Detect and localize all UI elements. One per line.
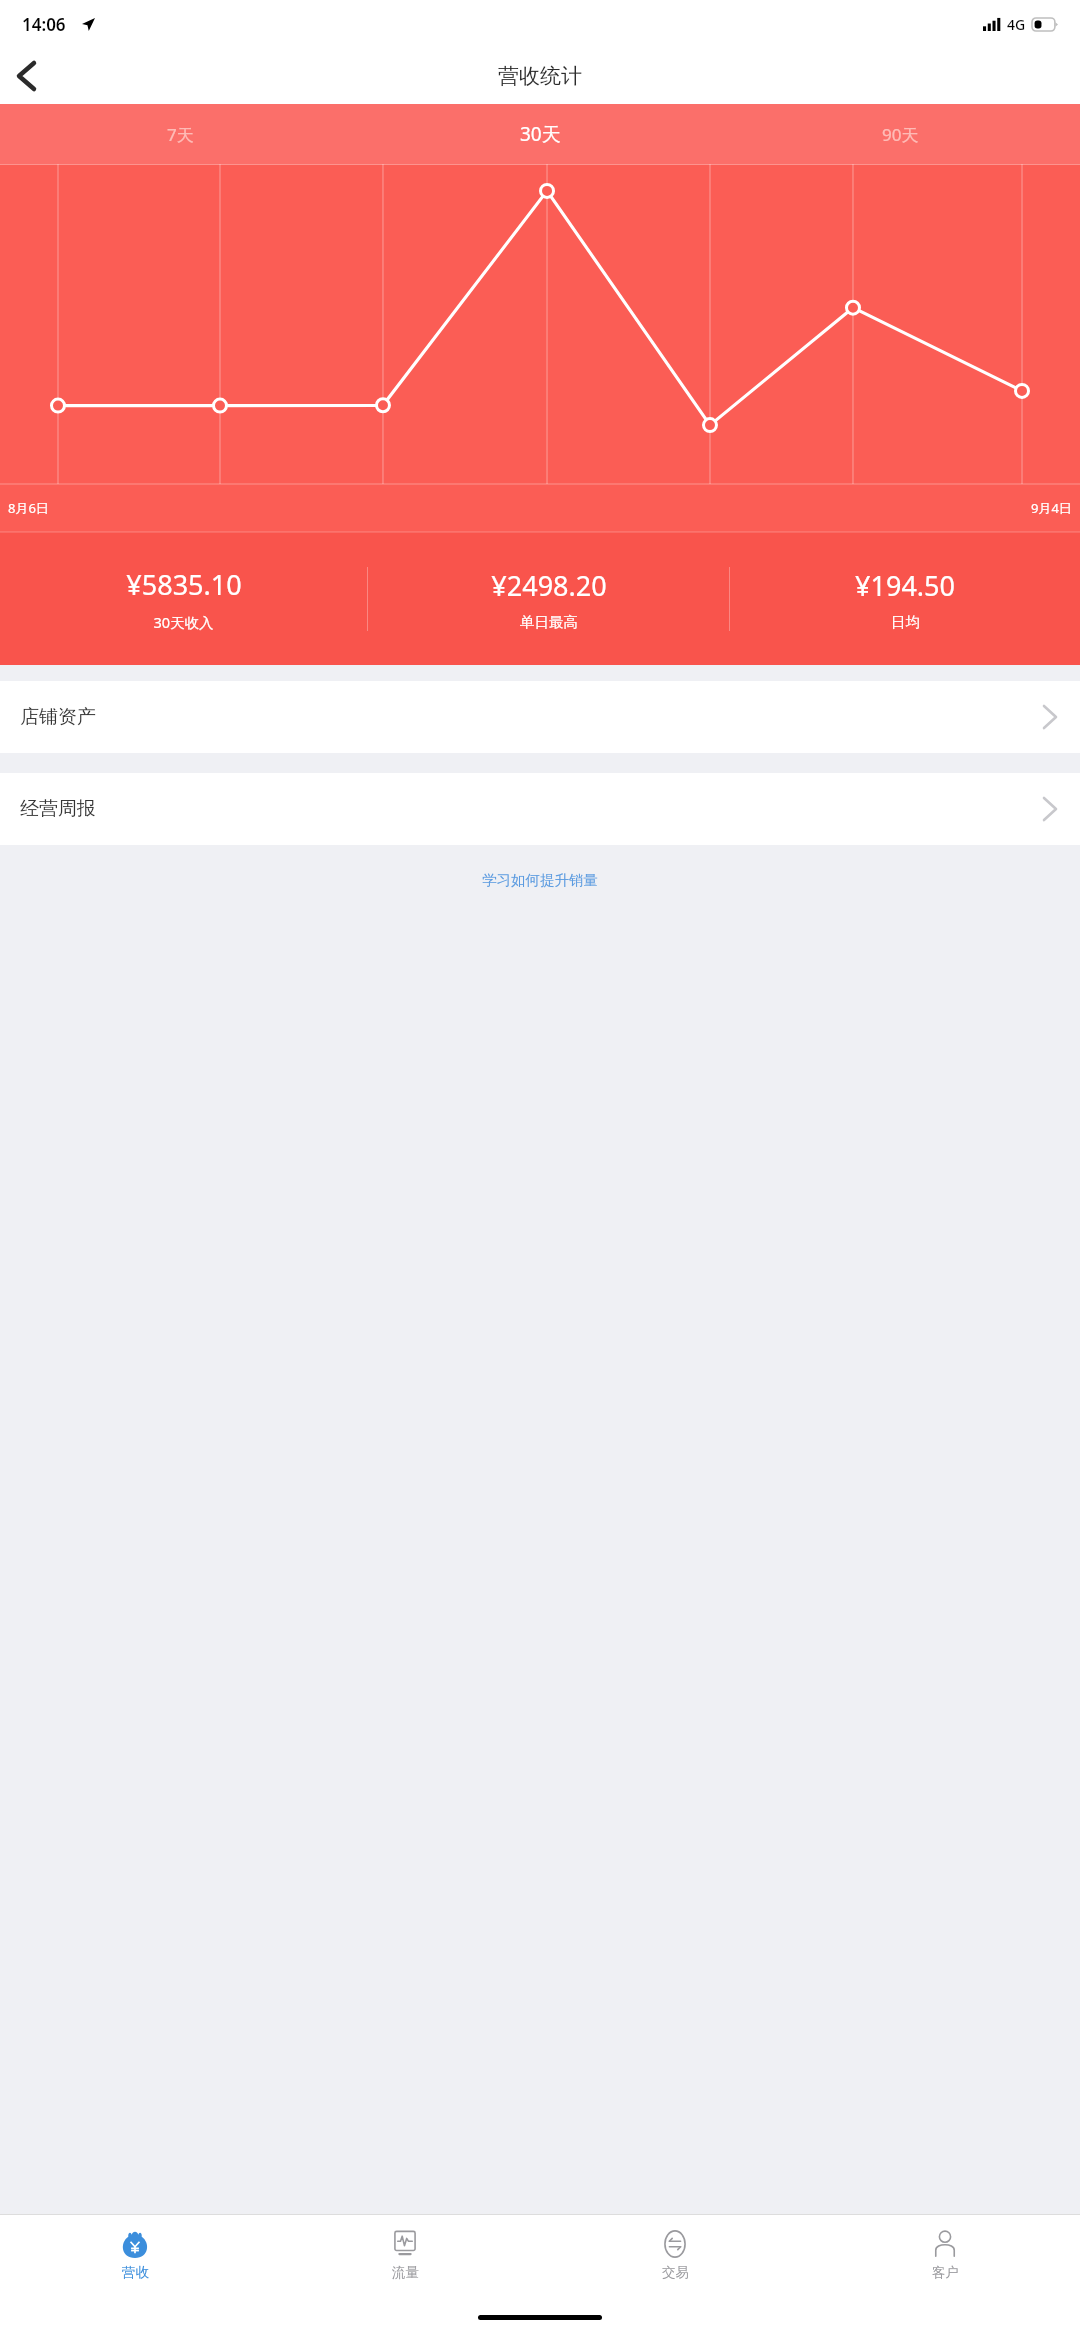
- button[interactable]: 经营周报: [0, 773, 1080, 845]
- staticText: 经营周报: [20, 797, 96, 821]
- button[interactable]: 30天: [360, 104, 720, 164]
- staticText: 店铺资产: [20, 705, 96, 729]
- staticText: 9月4日: [1031, 499, 1072, 517]
- button[interactable]: 店铺资产: [0, 681, 1080, 753]
- staticText: 流量: [392, 2264, 419, 2281]
- staticText: 4G: [1007, 15, 1026, 34]
- staticText: 90天: [882, 123, 919, 146]
- button[interactable]: 7天: [0, 104, 360, 164]
- staticText: 营收: [122, 2264, 149, 2281]
- staticText: 学习如何提升销量: [482, 871, 598, 889]
- button[interactable]: 交易: [540, 2230, 810, 2281]
- button[interactable]: 客户: [810, 2230, 1080, 2281]
- staticText: 日均: [891, 613, 920, 631]
- button[interactable]: 学习如何提升销量: [0, 871, 1080, 889]
- staticText: ¥2498.20: [491, 567, 607, 604]
- staticText: ¥194.50: [855, 567, 955, 604]
- button[interactable]: 90天: [720, 104, 1080, 164]
- button[interactable]: 流量: [270, 2230, 540, 2281]
- staticText: ¥5835.10: [126, 566, 242, 603]
- staticText: 30天: [520, 121, 561, 147]
- staticText: 交易: [662, 2264, 689, 2281]
- staticText: 客户: [932, 2264, 959, 2281]
- staticText: 单日最高: [520, 613, 578, 631]
- staticText: 营收统计: [498, 63, 582, 89]
- staticText: 7天: [167, 123, 194, 146]
- button[interactable]: Back: [0, 50, 52, 102]
- staticText: 14:06: [22, 13, 66, 36]
- button[interactable]: 营收: [0, 2230, 270, 2281]
- staticText: 30天收入: [153, 612, 214, 632]
- staticText: 8月6日: [8, 499, 49, 517]
